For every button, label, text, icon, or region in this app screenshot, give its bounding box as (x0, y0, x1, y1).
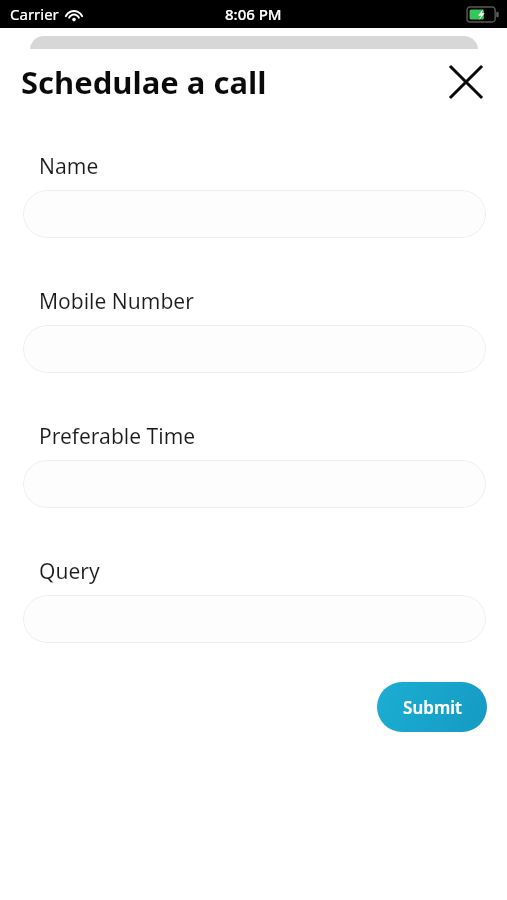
button[interactable]: Submit (377, 682, 487, 732)
staticText: Submit (403, 696, 462, 719)
staticText: Name (39, 152, 99, 181)
staticText: Carrier (10, 4, 59, 24)
button[interactable]: Close (444, 60, 488, 104)
staticText: Mobile Number (39, 287, 194, 316)
staticText: Schedulae a call (21, 61, 267, 103)
button[interactable]: Mobile Number (23, 325, 486, 373)
staticText: Query (39, 557, 100, 586)
button[interactable]: Query (23, 595, 486, 643)
staticText: 8:06 PM (225, 4, 282, 24)
staticText: Preferable Time (39, 422, 196, 451)
button[interactable]: Name (23, 190, 486, 238)
button[interactable]: Preferable Time (23, 460, 486, 508)
